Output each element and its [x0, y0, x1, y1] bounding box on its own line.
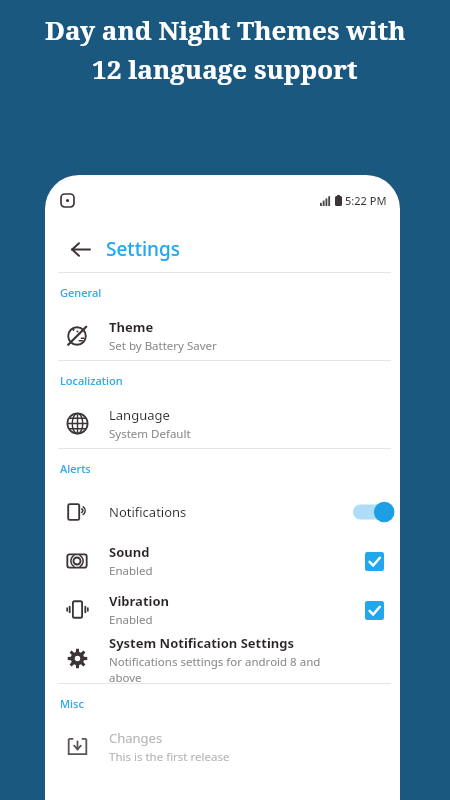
- button[interactable]: Checkbox checked: [363, 599, 385, 621]
- button[interactable]: Vibration: [45, 585, 400, 634]
- staticText: Theme: [109, 318, 154, 336]
- staticText: Language: [109, 406, 170, 424]
- button[interactable]: Language: [45, 399, 400, 448]
- staticText: Changes: [109, 729, 163, 747]
- button[interactable]: System Notification Settings: [45, 634, 400, 683]
- button[interactable]: Notifications toggle: [353, 500, 395, 524]
- button[interactable]: Back: [65, 234, 95, 264]
- button[interactable]: Notifications: [45, 487, 400, 536]
- button[interactable]: Changes: [45, 722, 400, 771]
- staticText: Notifications settings for android 8 and…: [109, 654, 348, 683]
- staticText: Alerts: [60, 461, 91, 476]
- staticText: This is the first release: [109, 749, 230, 765]
- staticText: Enabled: [109, 612, 153, 628]
- staticText: System Notification Settings: [109, 634, 294, 652]
- button[interactable]: Sound: [45, 536, 400, 585]
- staticText: 5:22 PM: [345, 193, 387, 208]
- button[interactable]: Checkbox checked: [363, 550, 385, 572]
- staticText: Misc: [60, 696, 84, 711]
- staticText: Enabled: [109, 563, 153, 579]
- staticText: Set by Battery Saver: [109, 338, 217, 354]
- staticText: Vibration: [109, 592, 169, 610]
- staticText: Localization: [60, 373, 123, 388]
- staticText: Sound: [109, 543, 150, 561]
- staticText: 12 language support: [92, 51, 358, 86]
- staticText: Day and Night Themes with: [45, 12, 406, 47]
- staticText: Notifications: [109, 503, 187, 521]
- staticText: System Default: [109, 426, 191, 442]
- staticText: General: [60, 285, 102, 300]
- button[interactable]: Theme: [45, 311, 400, 360]
- staticText: Settings: [106, 236, 180, 262]
